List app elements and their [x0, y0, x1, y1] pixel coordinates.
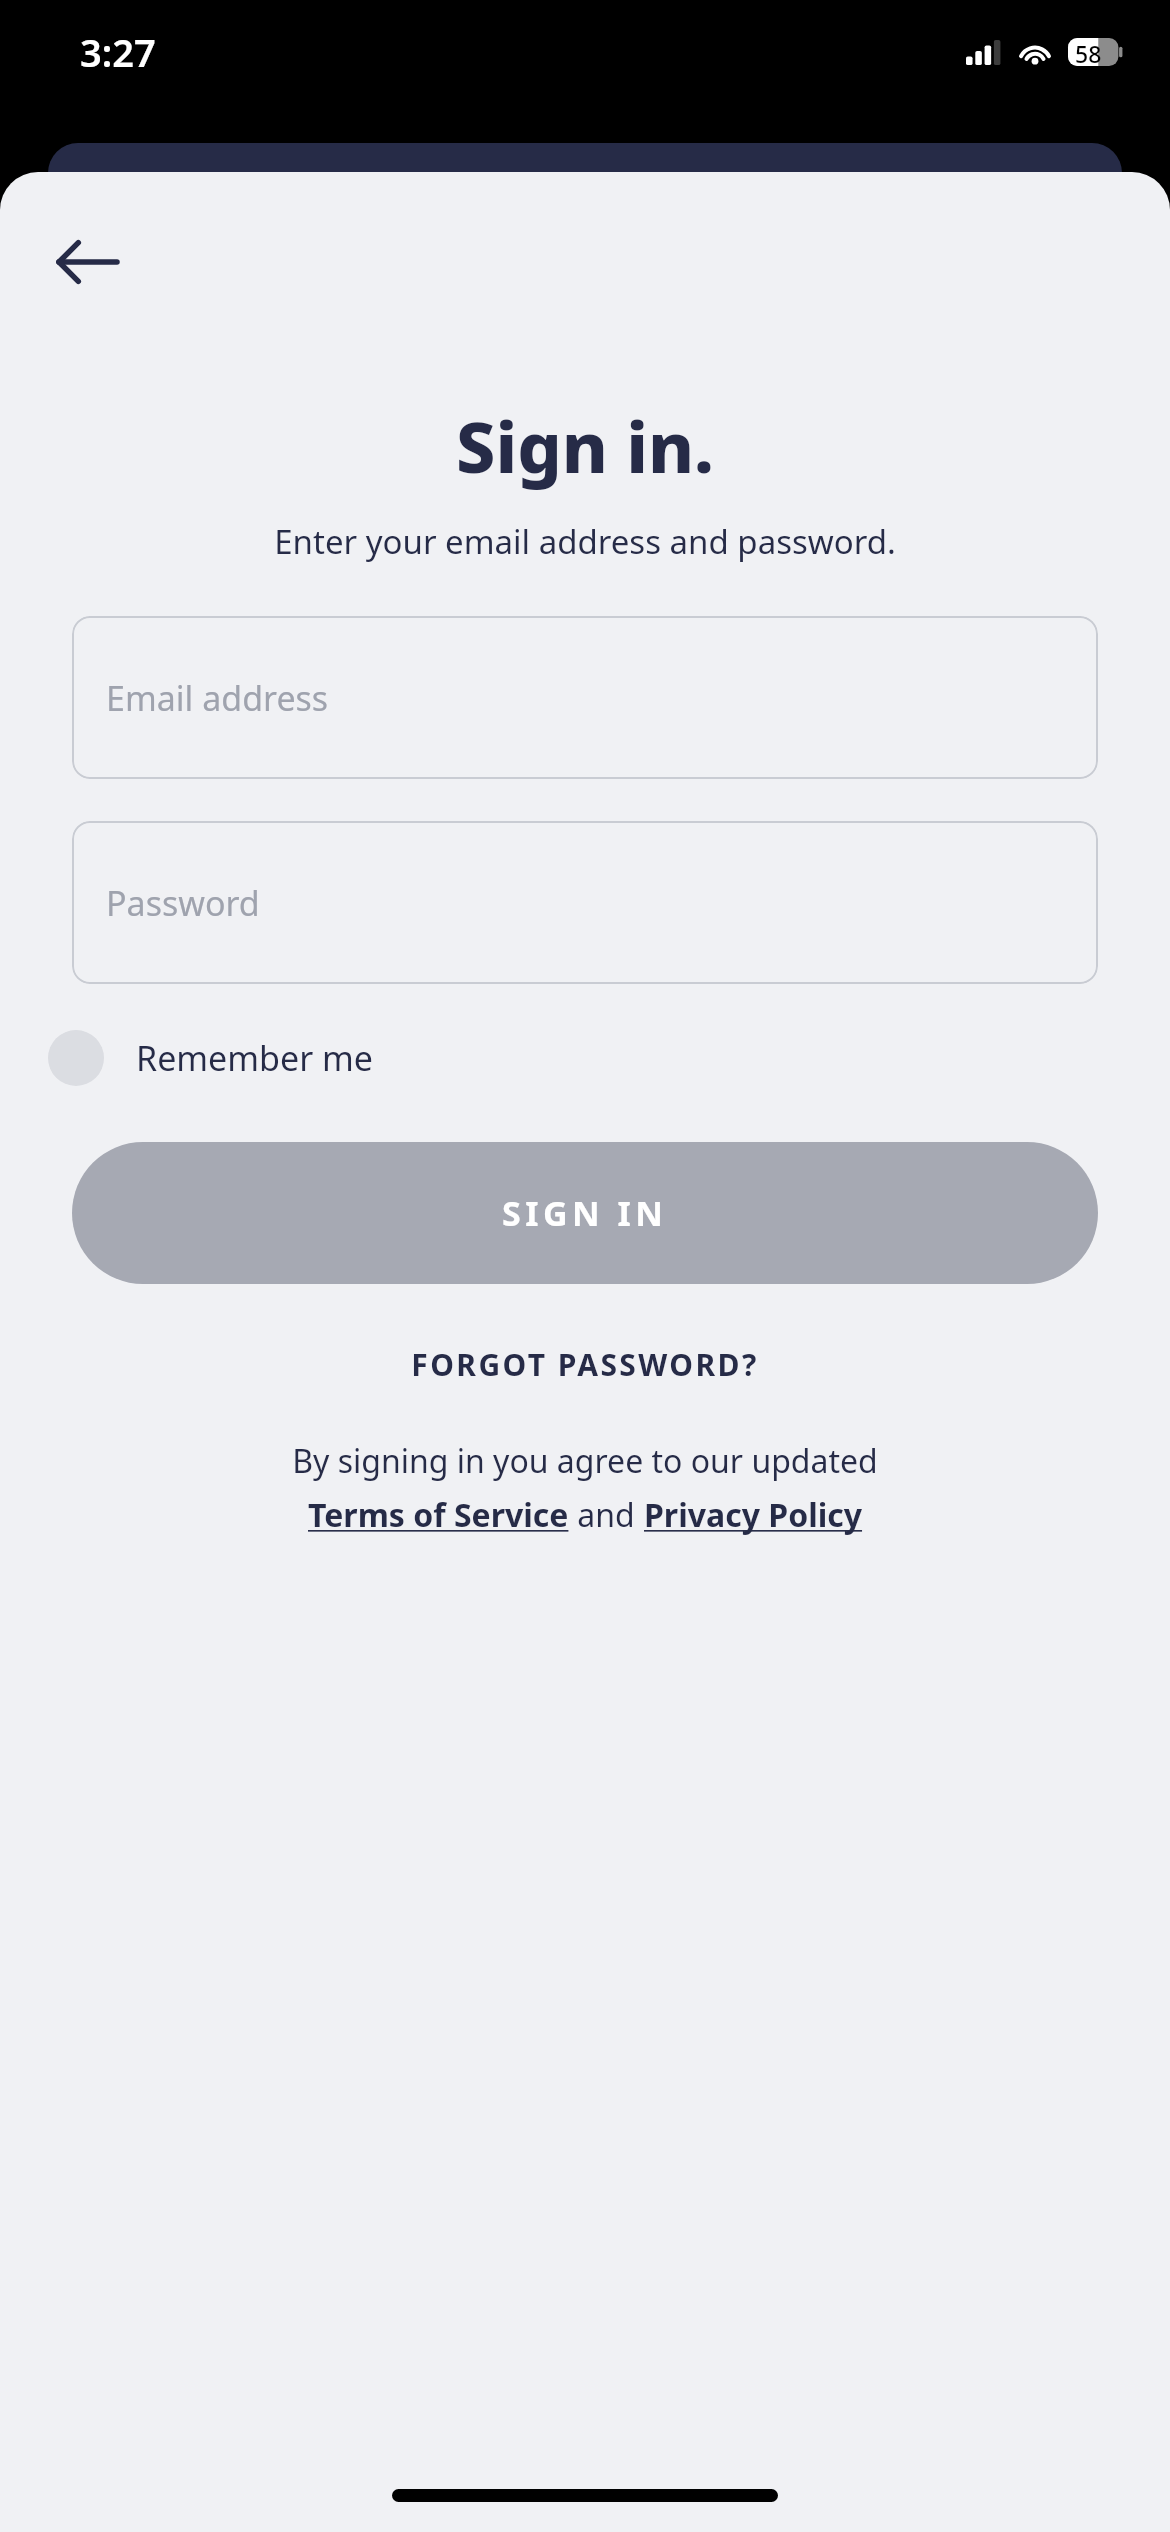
button[interactable]: Back — [40, 224, 136, 300]
staticText: 3:27 — [80, 26, 156, 78]
staticText: Privacy Policy — [644, 1493, 863, 1537]
staticText: Email address — [106, 675, 329, 721]
staticText: and — [569, 1493, 644, 1537]
button[interactable]: Privacy Policy — [644, 1493, 863, 1537]
button[interactable]: Remember me — [48, 1022, 374, 1094]
staticText: SIGN IN — [502, 1190, 668, 1236]
button[interactable]: SIGN IN — [72, 1142, 1098, 1284]
staticText: Enter your email address and password. — [0, 519, 1170, 564]
staticText: Password — [106, 880, 260, 926]
button[interactable]: Password — [72, 821, 1098, 984]
staticText: By signing in you agree to our updated — [0, 1439, 1170, 1483]
button[interactable]: Terms of Service — [308, 1493, 569, 1537]
staticText: 58 — [1075, 38, 1102, 66]
staticText: Sign in. — [0, 398, 1170, 493]
staticText: Remember me — [136, 1035, 374, 1081]
button[interactable]: FORGOT PASSWORD? — [0, 1328, 1170, 1401]
staticText: FORGOT PASSWORD? — [411, 1344, 759, 1385]
button[interactable]: Email address — [72, 616, 1098, 779]
staticText: Terms of Service — [308, 1493, 569, 1537]
